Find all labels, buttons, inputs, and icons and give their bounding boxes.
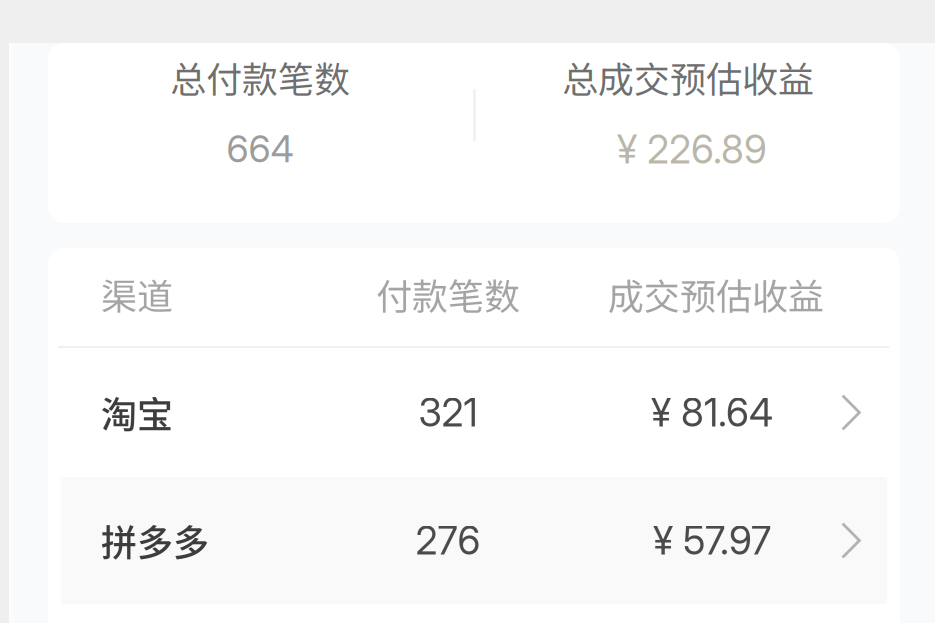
staticText: 664 (226, 126, 293, 171)
staticText: ¥ 226.89 (617, 126, 767, 173)
button[interactable]: 拼多多，付款笔数 276，成交预估收益 ¥ 57.97 (48, 477, 900, 604)
staticText: ¥ 81.64 (651, 389, 773, 436)
staticText: 321 (418, 389, 477, 436)
staticText: 总付款笔数 (170, 51, 350, 103)
staticText: 淘宝 (101, 386, 173, 438)
staticText: ¥ 57.97 (653, 517, 771, 564)
staticText: 总成交预估收益 (562, 51, 814, 103)
staticText: 拼多多 (101, 514, 209, 566)
staticText: 成交预估收益 (608, 268, 824, 320)
staticText: 付款笔数 (376, 268, 520, 320)
staticText: 276 (415, 517, 480, 564)
button[interactable]: 淘宝，付款笔数 321，成交预估收益 ¥ 81.64 (48, 348, 900, 477)
staticText: 渠道 (101, 268, 173, 320)
